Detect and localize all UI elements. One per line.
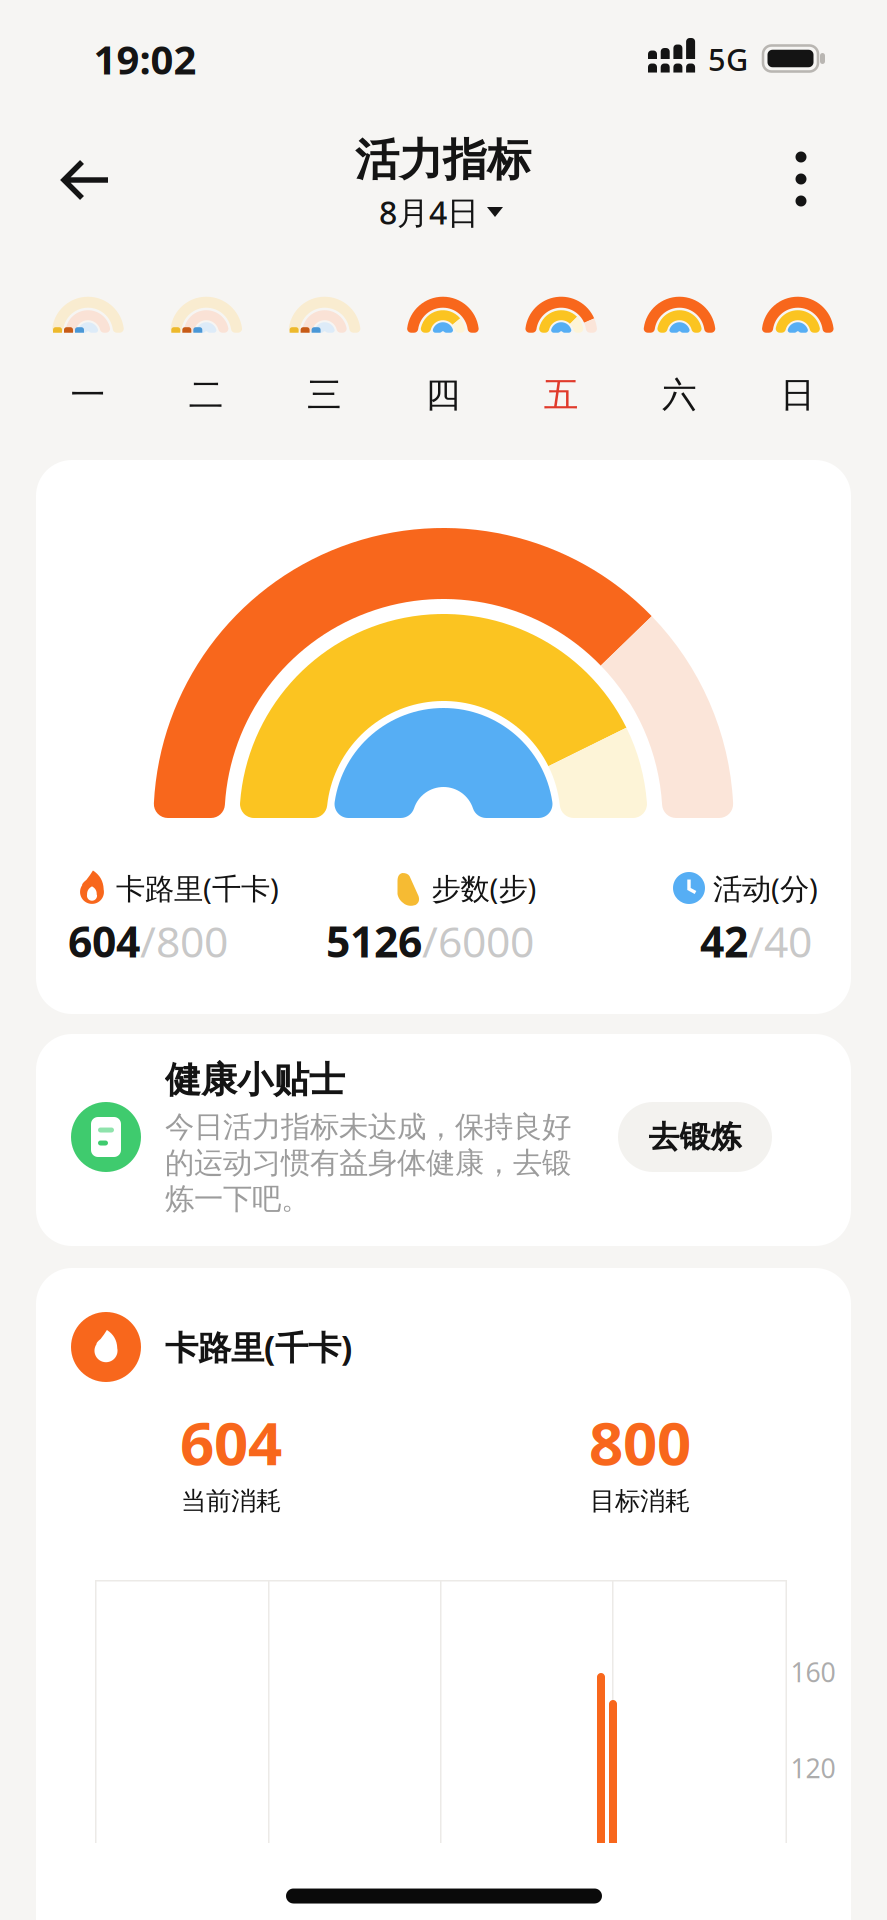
staticText: 604	[68, 913, 140, 969]
button[interactable]: 星期二	[168, 294, 244, 416]
button[interactable]: More	[795, 151, 807, 207]
staticText: 160	[790, 1654, 835, 1690]
staticText: 5G	[708, 39, 748, 79]
staticText: 三	[307, 374, 342, 416]
staticText: 120	[790, 1750, 835, 1786]
button[interactable]: 星期六	[641, 294, 717, 416]
staticText: 二	[189, 374, 224, 416]
button[interactable]: 星期日	[760, 294, 836, 416]
button[interactable]: 去锻炼	[618, 1102, 772, 1172]
staticText: 19:02	[93, 32, 196, 85]
staticText: 去锻炼	[648, 1118, 741, 1156]
staticText: 健康小贴士	[165, 1058, 345, 1102]
staticText: 当前消耗	[181, 1485, 281, 1516]
staticText: 五	[544, 374, 579, 416]
button[interactable]: 星期四	[405, 294, 481, 416]
staticText: 604	[180, 1402, 282, 1482]
staticText: 今日活力指标未达成，保持良好 的运动习惯有益身体健康，去锻 炼一下吧。	[165, 1109, 571, 1217]
staticText: 六	[662, 374, 697, 416]
staticText: /6000	[422, 913, 534, 969]
button[interactable]: 星期一	[50, 294, 126, 416]
button[interactable]: Back	[62, 160, 110, 200]
staticText: 卡路里(千卡)	[165, 1325, 352, 1369]
staticText: 日	[780, 374, 815, 416]
staticText: 800	[589, 1402, 691, 1482]
staticText: 四	[425, 374, 460, 416]
button[interactable]: 星期五	[523, 294, 599, 416]
staticText: 活动(分)	[713, 868, 818, 907]
button[interactable]: 卡路里(千卡)	[71, 1312, 491, 1382]
staticText: 卡路里(千卡)	[116, 868, 279, 907]
staticText: /40	[748, 913, 812, 969]
button[interactable]: 星期三	[287, 294, 363, 416]
staticText: 步数(步)	[431, 868, 536, 907]
staticText: 目标消耗	[590, 1485, 690, 1516]
button[interactable]: Select date	[379, 191, 503, 233]
staticText: 5126	[326, 913, 422, 969]
staticText: 一	[70, 374, 105, 416]
staticText: 活力指标	[355, 133, 531, 187]
staticText: 8月4日	[379, 191, 479, 233]
staticText: /800	[140, 913, 228, 969]
staticText: 42	[700, 913, 748, 969]
